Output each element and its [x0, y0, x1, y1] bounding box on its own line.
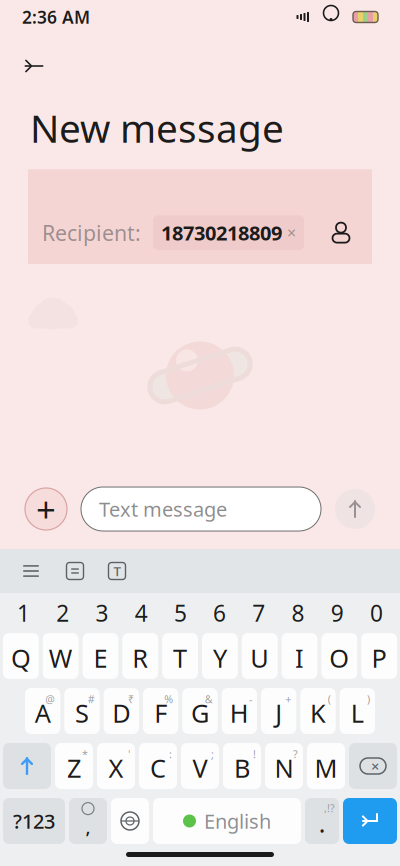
- staticText: S: [75, 696, 89, 730]
- staticText: 3: [95, 598, 108, 628]
- button[interactable]: W: [43, 633, 79, 679]
- button[interactable]: 5: [161, 596, 200, 630]
- button[interactable]: P: [361, 633, 397, 679]
- button[interactable]: V: [181, 743, 219, 789]
- button[interactable]: Q: [3, 633, 39, 679]
- staticText: Recipient:: [42, 218, 141, 247]
- staticText: O: [329, 641, 349, 675]
- staticText: Text message: [99, 496, 227, 522]
- button[interactable]: Backspace: [349, 743, 397, 789]
- button[interactable]: N: [265, 743, 303, 789]
- staticText: K: [310, 696, 326, 730]
- staticText: ': [128, 747, 130, 761]
- button[interactable]: 2: [43, 596, 82, 630]
- staticText: E: [93, 641, 107, 675]
- button[interactable]: L: [340, 688, 375, 734]
- button[interactable]: 8: [278, 596, 318, 630]
- button[interactable]: Period: [305, 798, 339, 844]
- button[interactable]: X: [97, 743, 135, 789]
- button[interactable]: ?123: [3, 798, 65, 844]
- button[interactable]: Change language: [111, 798, 149, 844]
- staticText: 4: [135, 598, 148, 628]
- button[interactable]: Z: [55, 743, 93, 789]
- button[interactable]: Recipient:: [28, 169, 372, 264]
- staticText: L: [351, 696, 364, 730]
- staticText: (: [328, 692, 331, 706]
- staticText: +: [36, 486, 56, 532]
- staticText: .: [319, 809, 325, 839]
- staticText: V: [192, 751, 207, 785]
- button[interactable]: 9: [318, 596, 357, 630]
- staticText: +: [285, 692, 291, 706]
- button[interactable]: 6: [200, 596, 239, 630]
- button[interactable]: Enter: [343, 798, 397, 844]
- button[interactable]: 4: [122, 596, 161, 630]
- staticText: 18730218809: [161, 219, 282, 246]
- staticText: 6: [213, 598, 226, 628]
- button[interactable]: Clipboard: [54, 554, 96, 588]
- staticText: 7: [252, 598, 265, 628]
- staticText: New message: [30, 102, 284, 153]
- button[interactable]: Text message: [81, 487, 321, 531]
- button[interactable]: Y: [202, 633, 238, 679]
- staticText: 8: [291, 598, 304, 628]
- staticText: English: [204, 808, 271, 834]
- staticText: M: [314, 751, 337, 785]
- button[interactable]: D: [104, 688, 139, 734]
- staticText: T: [113, 562, 120, 580]
- staticText: ×: [287, 222, 296, 243]
- staticText: %: [164, 692, 173, 706]
- staticText: ,: [85, 815, 90, 839]
- staticText: ?123: [13, 808, 55, 834]
- staticText: ?: [293, 747, 298, 761]
- button[interactable]: 3: [82, 596, 122, 630]
- staticText: Y: [213, 641, 227, 675]
- button[interactable]: F: [143, 688, 178, 734]
- button[interactable]: I: [282, 633, 317, 679]
- button[interactable]: A: [25, 688, 60, 734]
- button[interactable]: S: [64, 688, 100, 734]
- staticText: 5: [174, 598, 187, 628]
- button[interactable]: C: [139, 743, 177, 789]
- staticText: P: [372, 641, 387, 675]
- button[interactable]: K: [300, 688, 336, 734]
- staticText: ₹: [128, 692, 134, 706]
- staticText: F: [154, 696, 167, 730]
- staticText: ,!?: [324, 801, 335, 815]
- button[interactable]: Emoji and comma: [69, 798, 107, 844]
- staticText: &: [205, 692, 213, 706]
- staticText: U: [250, 641, 269, 675]
- button[interactable]: English: [153, 798, 301, 844]
- button[interactable]: J: [261, 688, 296, 734]
- staticText: D: [112, 696, 130, 730]
- button[interactable]: Keyboard menu: [8, 554, 54, 588]
- button[interactable]: M: [307, 743, 345, 789]
- staticText: 0: [370, 598, 383, 628]
- button[interactable]: U: [242, 633, 278, 679]
- button[interactable]: Shift: [3, 743, 51, 789]
- staticText: T: [173, 641, 187, 675]
- button[interactable]: E: [83, 633, 118, 679]
- button[interactable]: G: [182, 688, 218, 734]
- staticText: ;: [211, 747, 214, 761]
- staticText: @: [45, 692, 55, 706]
- button[interactable]: Add attachment: [25, 488, 67, 530]
- staticText: 1: [17, 598, 30, 628]
- button[interactable]: Back: [12, 44, 56, 88]
- staticText: #: [88, 692, 95, 706]
- staticText: Q: [11, 641, 31, 675]
- button[interactable]: O: [321, 633, 357, 679]
- staticText: 9: [331, 598, 344, 628]
- button[interactable]: 1: [4, 596, 43, 630]
- staticText: *: [82, 747, 88, 761]
- staticText: ): [367, 692, 370, 706]
- button[interactable]: 7: [239, 596, 278, 630]
- button[interactable]: Text mode: [96, 554, 138, 588]
- staticText: 2:36 AM: [22, 5, 90, 28]
- button[interactable]: R: [122, 633, 158, 679]
- button[interactable]: B: [223, 743, 261, 789]
- button[interactable]: 0: [357, 596, 396, 630]
- button[interactable]: Send: [335, 489, 375, 529]
- button[interactable]: H: [222, 688, 257, 734]
- button[interactable]: T: [162, 633, 198, 679]
